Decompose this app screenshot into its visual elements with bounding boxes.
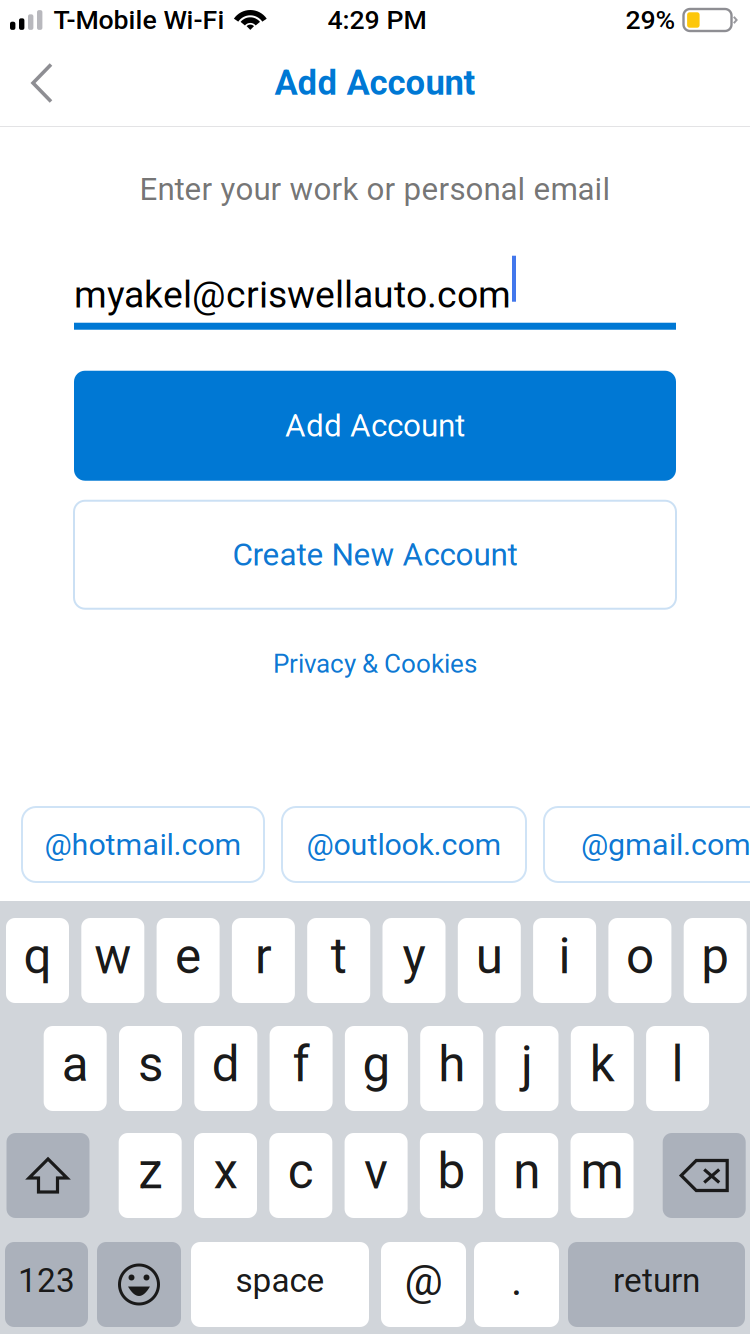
button[interactable]: o xyxy=(608,918,671,1003)
staticText: j xyxy=(521,1036,533,1093)
button[interactable]: i xyxy=(533,918,596,1003)
staticText: @outlook.com xyxy=(306,827,501,862)
button[interactable]: y xyxy=(382,918,445,1003)
button[interactable]: Delete xyxy=(663,1133,746,1218)
button[interactable]: Add Account xyxy=(74,371,676,481)
button[interactable]: Shift xyxy=(6,1133,89,1218)
button[interactable]: . xyxy=(474,1242,559,1327)
button[interactable]: h xyxy=(420,1026,483,1111)
button[interactable]: q xyxy=(6,918,69,1003)
button[interactable]: return xyxy=(568,1242,745,1327)
staticText: w xyxy=(94,928,131,985)
staticText: l xyxy=(672,1036,684,1093)
button[interactable]: u xyxy=(458,918,521,1003)
staticText: p xyxy=(701,928,729,985)
button[interactable]: g xyxy=(345,1026,408,1111)
staticText: q xyxy=(23,928,51,985)
button[interactable]: f xyxy=(270,1026,333,1111)
staticText: s xyxy=(138,1036,163,1093)
staticText: m xyxy=(580,1143,623,1200)
staticText: e xyxy=(175,928,201,985)
staticText: @ xyxy=(404,1255,442,1305)
staticText: Add Account xyxy=(285,407,465,444)
button[interactable]: w xyxy=(81,918,144,1003)
button[interactable]: x xyxy=(194,1133,257,1218)
staticText: k xyxy=(590,1036,615,1093)
staticText: t xyxy=(331,928,347,985)
button[interactable]: Back xyxy=(0,40,80,126)
staticText: a xyxy=(62,1036,89,1093)
staticText: i xyxy=(559,928,571,985)
staticText: @hotmail.com xyxy=(44,827,241,862)
staticText: myakel@criswellauto.com xyxy=(74,273,511,316)
button[interactable]: l xyxy=(646,1026,709,1111)
button[interactable]: a xyxy=(44,1026,107,1111)
button[interactable]: s xyxy=(119,1026,182,1111)
staticText: Create New Account xyxy=(232,536,517,573)
button[interactable]: k xyxy=(571,1026,634,1111)
button[interactable]: 123 xyxy=(5,1242,88,1327)
button[interactable]: @outlook.com xyxy=(282,807,526,882)
staticText: x xyxy=(213,1143,237,1200)
staticText: 123 xyxy=(18,1261,75,1300)
button[interactable]: p xyxy=(684,918,747,1003)
staticText: r xyxy=(255,928,272,985)
button[interactable]: n xyxy=(495,1133,558,1218)
staticText: h xyxy=(438,1036,465,1093)
button[interactable]: Emoji xyxy=(97,1242,181,1327)
staticText: b xyxy=(437,1143,465,1200)
staticText: Add Account xyxy=(274,63,475,103)
staticText: return xyxy=(613,1261,700,1300)
button[interactable]: e xyxy=(157,918,220,1003)
button[interactable]: t xyxy=(307,918,370,1003)
staticText: c xyxy=(288,1143,314,1200)
button[interactable]: @hotmail.com xyxy=(22,807,264,882)
staticText: . xyxy=(511,1255,522,1305)
staticText: y xyxy=(402,928,425,985)
staticText: d xyxy=(212,1036,240,1093)
staticText: Privacy & Cookies xyxy=(273,649,477,679)
staticText: v xyxy=(364,1143,388,1200)
button[interactable]: Privacy & Cookies xyxy=(253,637,497,691)
staticText: n xyxy=(513,1143,540,1200)
button[interactable]: space xyxy=(191,1242,369,1327)
staticText: 4:29 PM xyxy=(327,4,426,36)
staticText: T-Mobile Wi-Fi xyxy=(53,4,224,36)
button[interactable]: Create New Account xyxy=(74,501,676,609)
button[interactable]: z xyxy=(119,1133,182,1218)
staticText: @gmail.com xyxy=(581,827,750,862)
staticText: o xyxy=(626,928,654,985)
staticText: z xyxy=(138,1143,162,1200)
button[interactable]: v xyxy=(345,1133,408,1218)
button[interactable]: c xyxy=(269,1133,332,1218)
staticText: Enter your work or personal email xyxy=(139,171,610,208)
button[interactable]: m xyxy=(570,1133,633,1218)
staticText: u xyxy=(476,928,503,985)
staticText: 29% xyxy=(625,4,675,36)
staticText: f xyxy=(293,1036,310,1093)
staticText: g xyxy=(362,1036,390,1093)
button[interactable]: r xyxy=(232,918,295,1003)
button[interactable]: d xyxy=(194,1026,257,1111)
staticText: space xyxy=(235,1261,324,1300)
button[interactable]: @gmail.com xyxy=(544,807,750,882)
button[interactable]: j xyxy=(495,1026,558,1111)
button[interactable]: b xyxy=(420,1133,483,1218)
button[interactable]: @ xyxy=(381,1242,466,1327)
